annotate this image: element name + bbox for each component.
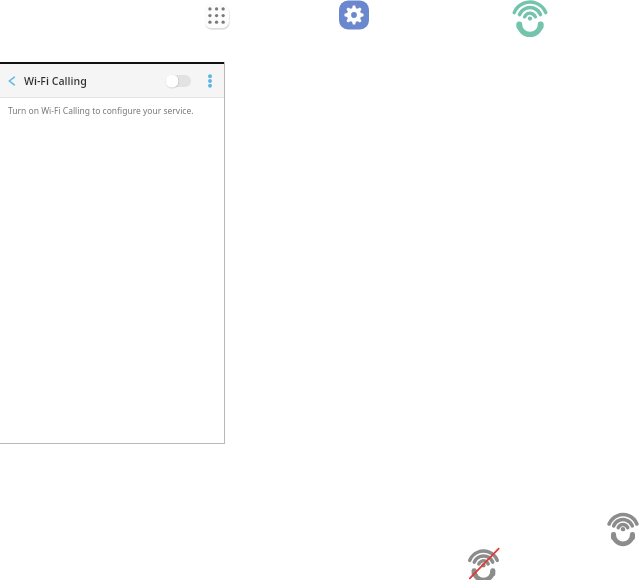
staticText: Wi-Fi Calling	[24, 74, 87, 88]
button[interactable]: More options	[203, 64, 217, 97]
button[interactable]: Apps	[202, 1, 232, 31]
button[interactable]: Wi-Fi Calling enabled	[607, 511, 639, 542]
button[interactable]: Back	[0, 64, 24, 97]
button[interactable]: Wi-Fi Calling toggle	[165, 74, 191, 88]
button[interactable]: Wi-Fi Calling disabled	[466, 547, 504, 580]
button[interactable]: Settings	[339, 0, 369, 30]
staticText: Turn on Wi-Fi Calling to configure your …	[8, 105, 194, 117]
button[interactable]: Wi-Fi Calling	[513, 1, 547, 31]
